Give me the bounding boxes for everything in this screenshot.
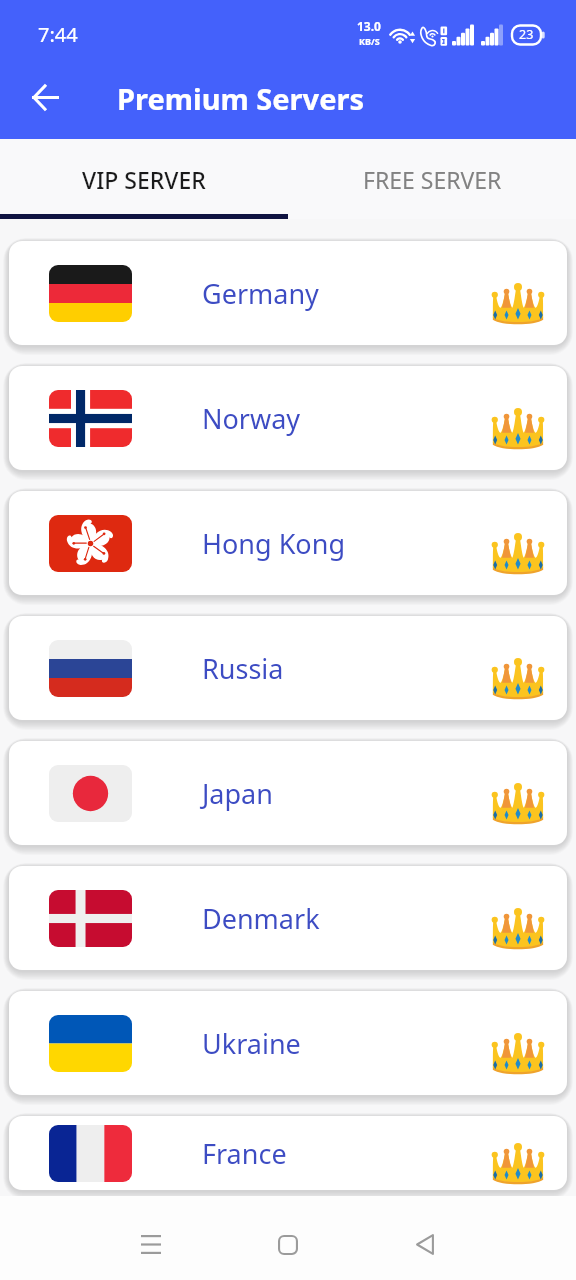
button[interactable]: Norway: [9, 366, 567, 470]
button[interactable]: France: [9, 1116, 567, 1190]
button[interactable]: Back: [400, 1196, 449, 1280]
staticText: Norway: [202, 400, 301, 437]
button[interactable]: FREE SERVER: [288, 139, 576, 219]
button[interactable]: Hong Kong: [9, 491, 567, 595]
button[interactable]: Recents: [126, 1196, 175, 1280]
staticText: Premium Servers: [117, 79, 364, 118]
button[interactable]: Home: [264, 1196, 312, 1280]
staticText: Ukraine: [202, 1025, 301, 1062]
staticText: 7:44: [38, 21, 78, 48]
button[interactable]: Back: [13, 67, 77, 131]
staticText: Russia: [202, 650, 284, 687]
staticText: Hong Kong: [202, 525, 345, 562]
button[interactable]: Germany: [9, 241, 567, 345]
staticText: KB/S: [359, 35, 380, 47]
staticText: Japan: [202, 775, 273, 812]
staticText: 13.0: [357, 18, 381, 34]
button[interactable]: VIP SERVER: [0, 139, 288, 219]
button[interactable]: Ukraine: [9, 991, 567, 1095]
staticText: Germany: [202, 275, 319, 312]
staticText: 23: [519, 26, 534, 43]
button[interactable]: Russia: [9, 616, 567, 720]
staticText: Denmark: [202, 900, 320, 937]
button[interactable]: Denmark: [9, 866, 567, 970]
staticText: VIP SERVER: [82, 164, 206, 195]
staticText: France: [202, 1135, 287, 1172]
staticText: FREE SERVER: [363, 164, 502, 195]
button[interactable]: Japan: [9, 741, 567, 845]
